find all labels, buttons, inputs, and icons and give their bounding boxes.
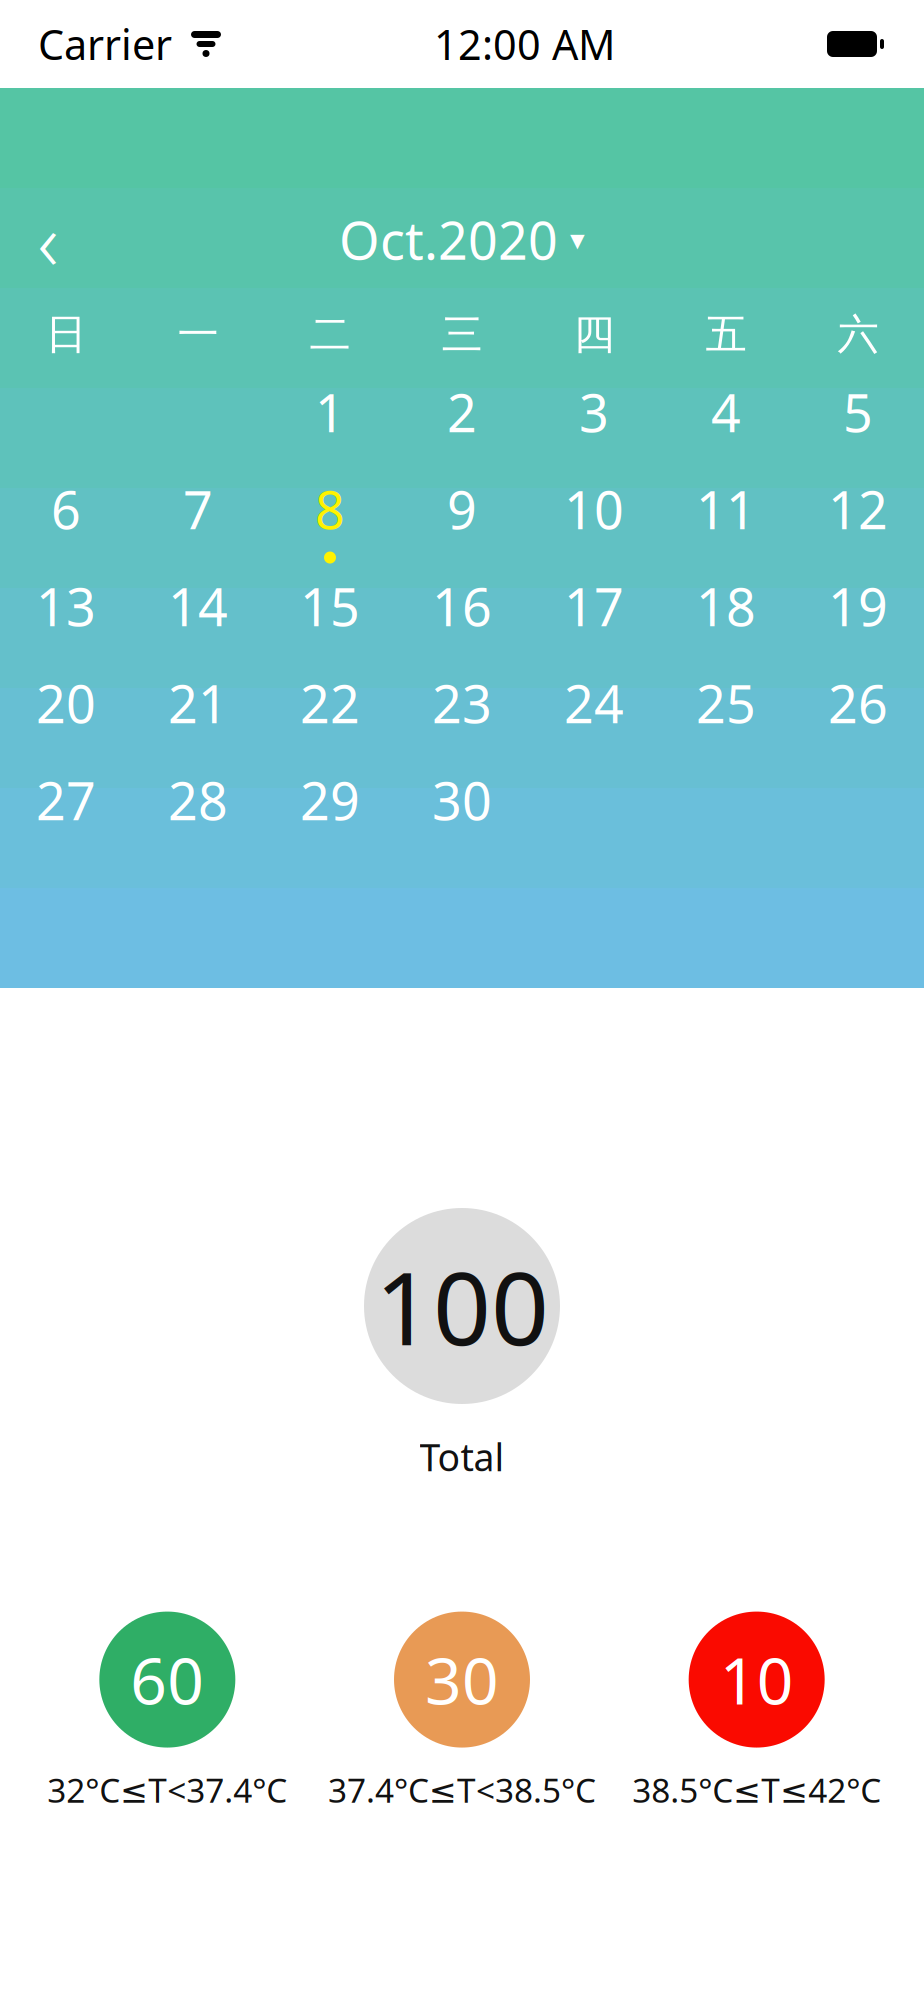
- button[interactable]: 1: [264, 373, 396, 470]
- staticText: 22: [300, 668, 360, 738]
- staticText: 60: [130, 1637, 204, 1722]
- button[interactable]: 10: [528, 470, 660, 567]
- staticText: 12: [828, 474, 888, 544]
- staticText: 32°C≤T<37.4°C: [47, 1768, 287, 1812]
- button[interactable]: 4: [660, 373, 792, 470]
- staticText: 29: [300, 765, 360, 835]
- staticText: 4: [711, 377, 741, 447]
- button[interactable]: 24: [528, 664, 660, 761]
- button[interactable]: [792, 761, 924, 858]
- staticText: 四: [573, 309, 614, 360]
- staticText: ▾: [570, 223, 585, 256]
- button[interactable]: 8: [264, 470, 396, 567]
- button[interactable]: Oct.2020: [317, 191, 607, 288]
- staticText: 15: [300, 571, 360, 641]
- staticText: [587, 765, 601, 835]
- staticText: 20: [36, 668, 96, 738]
- staticText: 38.5°C≤T≤42°C: [632, 1768, 881, 1812]
- button[interactable]: [528, 761, 660, 858]
- staticText: 一: [177, 309, 218, 360]
- staticText: [719, 765, 733, 835]
- staticText: 100: [375, 1239, 549, 1373]
- staticText: 21: [168, 668, 228, 738]
- staticText: 23: [432, 668, 492, 738]
- staticText: 19: [828, 571, 888, 641]
- staticText: 13: [36, 571, 96, 641]
- button[interactable]: 6: [0, 470, 132, 567]
- button[interactable]: Back: [0, 191, 96, 287]
- staticText: 7: [183, 474, 213, 544]
- button[interactable]: 29: [264, 761, 396, 858]
- button[interactable]: 14: [132, 567, 264, 664]
- staticText: 37.4°C≤T<38.5°C: [328, 1768, 596, 1812]
- button[interactable]: 20: [0, 664, 132, 761]
- staticText: 16: [432, 571, 492, 641]
- staticText: 24: [564, 668, 624, 738]
- staticText: 9: [447, 474, 477, 544]
- button[interactable]: 7: [132, 470, 264, 567]
- button[interactable]: 60: [20, 1612, 315, 1812]
- button[interactable]: 27: [0, 761, 132, 858]
- button[interactable]: 28: [132, 761, 264, 858]
- staticText: 5: [843, 377, 873, 447]
- staticText: 26: [828, 668, 888, 738]
- button[interactable]: 15: [264, 567, 396, 664]
- button[interactable]: 30: [315, 1612, 609, 1812]
- button[interactable]: 9: [396, 470, 528, 567]
- staticText: 五: [705, 309, 746, 360]
- staticText: 三: [441, 309, 482, 360]
- button[interactable]: 11: [660, 470, 792, 567]
- staticText: [851, 765, 865, 835]
- button[interactable]: 22: [264, 664, 396, 761]
- button[interactable]: 26: [792, 664, 924, 761]
- button[interactable]: 12: [792, 470, 924, 567]
- button[interactable]: 19: [792, 567, 924, 664]
- staticText: 2: [447, 377, 477, 447]
- staticText: 8: [315, 474, 345, 544]
- button[interactable]: 13: [0, 567, 132, 664]
- staticText: 二: [309, 309, 350, 360]
- staticText: 30: [432, 765, 492, 835]
- button[interactable]: 5: [792, 373, 924, 470]
- staticText: 日: [45, 309, 86, 360]
- staticText: 30: [425, 1637, 499, 1722]
- staticText: ‹: [37, 186, 58, 293]
- button[interactable]: 18: [660, 567, 792, 664]
- staticText: 18: [696, 571, 756, 641]
- button[interactable]: 30: [396, 761, 528, 858]
- staticText: 6: [51, 474, 81, 544]
- staticText: 28: [168, 765, 228, 835]
- staticText: 12:00 AM: [434, 17, 615, 71]
- button[interactable]: 25: [660, 664, 792, 761]
- staticText: 六: [837, 309, 878, 360]
- button[interactable]: [660, 761, 792, 858]
- staticText: 25: [696, 668, 756, 738]
- staticText: 11: [696, 474, 756, 544]
- staticText: 14: [168, 571, 228, 641]
- staticText: Total: [419, 1432, 504, 1482]
- button[interactable]: 10: [609, 1612, 904, 1812]
- button[interactable]: 23: [396, 664, 528, 761]
- staticText: Oct.2020: [339, 205, 558, 274]
- button[interactable]: 17: [528, 567, 660, 664]
- staticText: Carrier: [38, 17, 172, 71]
- staticText: 27: [36, 765, 96, 835]
- button[interactable]: 16: [396, 567, 528, 664]
- button[interactable]: 21: [132, 664, 264, 761]
- button[interactable]: 2: [396, 373, 528, 470]
- staticText: 10: [564, 474, 624, 544]
- staticText: 17: [564, 571, 624, 641]
- button[interactable]: 3: [528, 373, 660, 470]
- staticText: 3: [579, 377, 609, 447]
- staticText: 1: [315, 377, 345, 447]
- staticText: 10: [720, 1637, 794, 1722]
